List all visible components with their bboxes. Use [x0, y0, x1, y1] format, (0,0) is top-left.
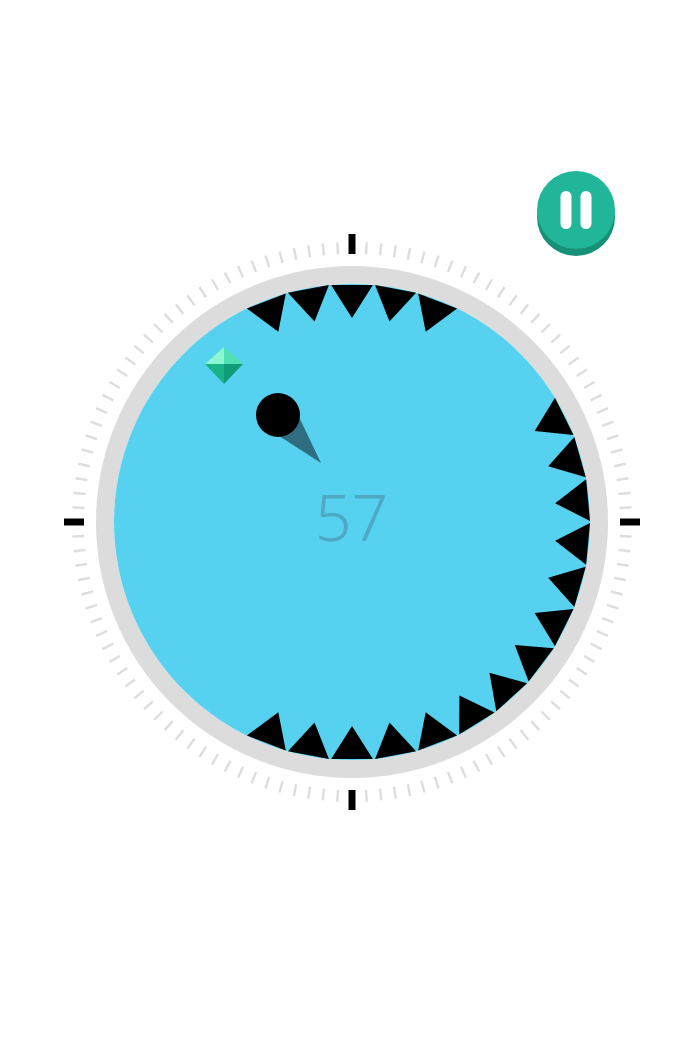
button[interactable]: Pause [0, 0, 700, 1050]
button[interactable]: Game dial [0, 0, 700, 1050]
